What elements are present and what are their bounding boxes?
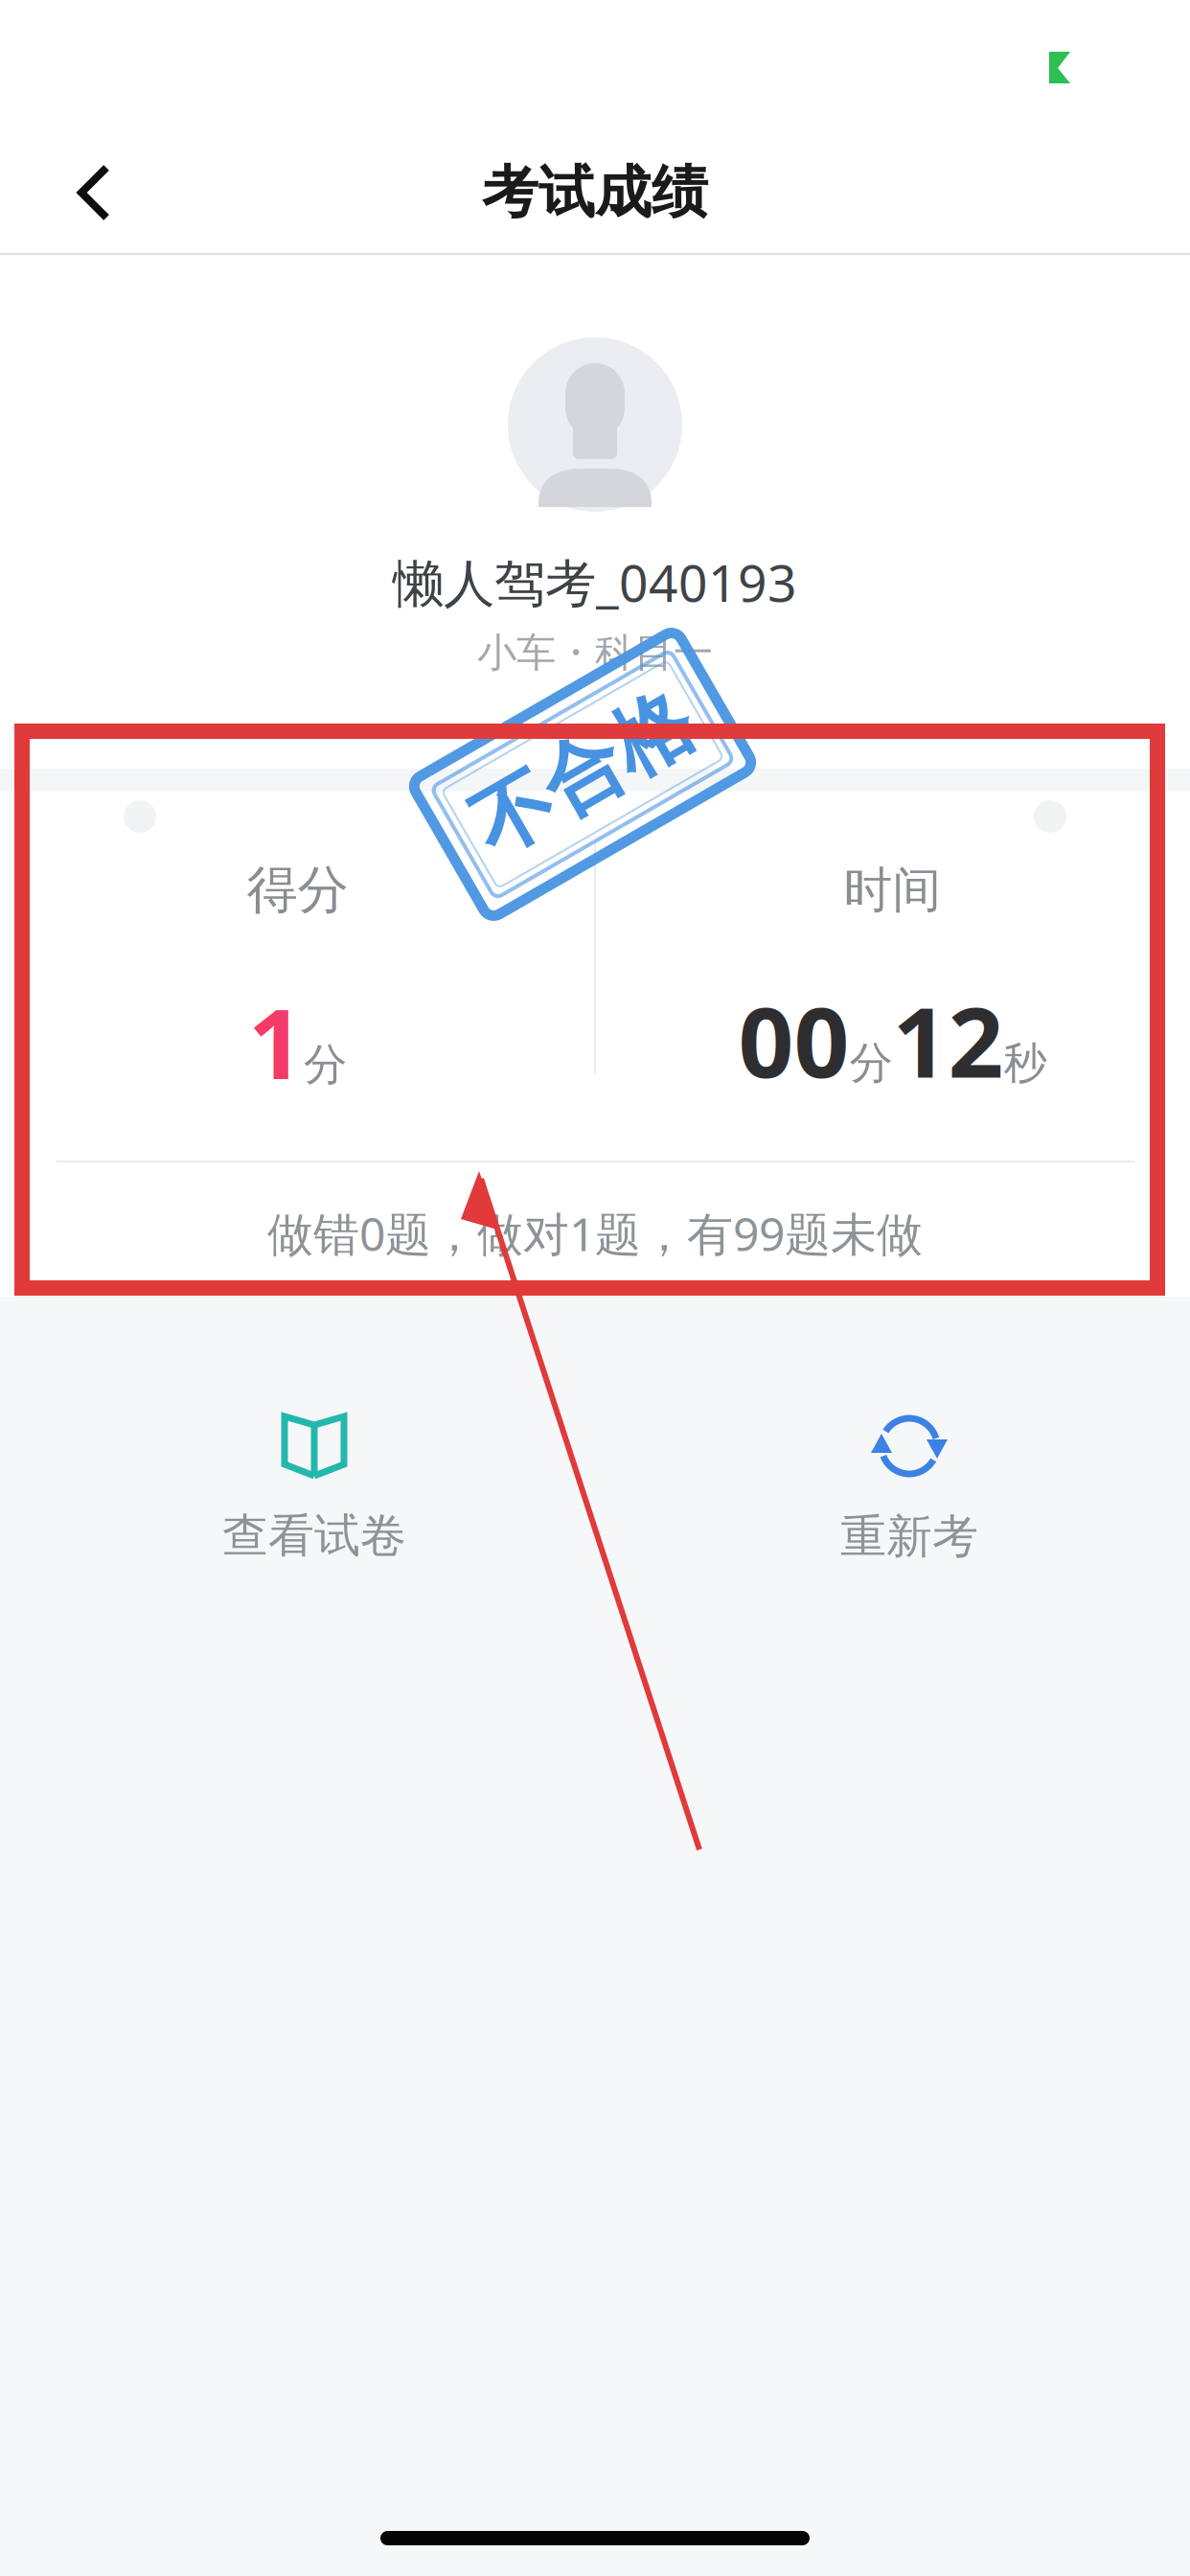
staticText: 00 [738,975,849,1104]
staticText: 12 [892,975,1004,1104]
staticText: 懒人驾考_040193 [393,548,797,616]
staticText: 查看试卷 [222,1507,406,1564]
staticText: 分 [849,1036,892,1090]
button[interactable]: 查看试卷 [142,1391,487,1585]
staticText: 做错0题，做对1题，有99题未做 [267,1203,923,1264]
staticText: 考试成绩 [482,158,708,227]
staticText: 时间 [844,860,941,920]
staticText: 1 [248,977,304,1106]
staticText: 秒 [1004,1036,1047,1090]
staticText: 小车・科目一 [477,628,713,677]
button[interactable]: Back [0,133,188,252]
button[interactable]: 重新考 [737,1390,1082,1586]
staticText: 重新考 [840,1508,978,1565]
staticText: 不合格 [463,726,702,823]
staticText: 分 [304,1038,347,1091]
staticText: 得分 [247,859,348,921]
